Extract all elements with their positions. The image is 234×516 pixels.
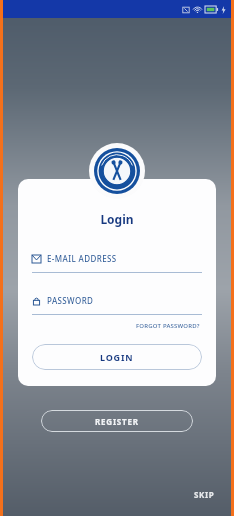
staticText: FORGOT PASSWORD? <box>136 322 200 330</box>
button[interactable]: LOGIN <box>32 344 202 370</box>
staticText: Login <box>32 211 202 227</box>
staticText: REGISTER <box>95 416 139 427</box>
staticText: PASSWORD <box>47 295 94 306</box>
button[interactable]: PASSWORD <box>32 295 202 315</box>
staticText: E-MAIL ADDRESS <box>47 253 117 264</box>
other: App logo <box>89 143 145 199</box>
button[interactable]: REGISTER <box>41 410 193 432</box>
button[interactable]: E-MAIL ADDRESS <box>32 253 202 273</box>
button[interactable]: SKIP <box>188 485 221 504</box>
button[interactable]: FORGOT PASSWORD? <box>134 320 202 332</box>
staticText: LOGIN <box>100 351 134 363</box>
staticText: SKIP <box>194 489 215 500</box>
